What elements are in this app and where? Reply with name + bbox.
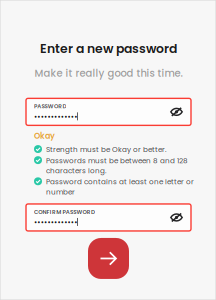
staticText: CONFIRM PASSWORD (34, 208, 95, 216)
staticText: Enter a new password (40, 40, 177, 57)
staticText: Okay (34, 130, 55, 142)
staticText: Password contains at least one letter or… (46, 177, 194, 197)
staticText: Make it really good this time. (34, 66, 182, 80)
staticText: ••••••••••••• (34, 217, 77, 227)
staticText: Strength must be Okay or better. (46, 145, 167, 155)
button[interactable]: Confirm password (26, 204, 191, 231)
button[interactable]: Password (26, 98, 191, 125)
staticText: Passwords must be between 8 and 128 char… (46, 156, 188, 176)
staticText: ••••••••••••• (34, 112, 77, 121)
button[interactable]: Continue (88, 238, 129, 279)
staticText: PASSWORD (34, 102, 66, 110)
